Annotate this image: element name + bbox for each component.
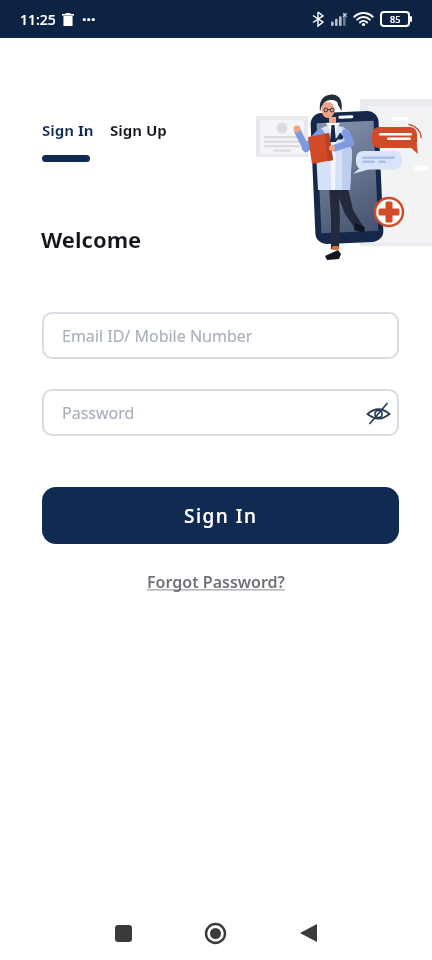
staticText: 85	[390, 13, 401, 25]
button[interactable]: Forgot Password?	[147, 571, 285, 593]
staticText: Sign Up	[110, 120, 167, 140]
button[interactable]: Sign In	[42, 120, 94, 162]
button[interactable]	[292, 917, 324, 949]
staticText: 11:25	[20, 10, 56, 29]
button[interactable]: Email ID/ Mobile Number	[42, 312, 399, 359]
staticText: Sign In	[184, 503, 258, 529]
staticText: Sign In	[42, 120, 94, 140]
staticText: Email ID/ Mobile Number	[62, 325, 253, 347]
staticText: Password	[62, 402, 135, 424]
button[interactable]: Sign Up	[110, 120, 167, 140]
button[interactable]	[199, 917, 231, 949]
button[interactable]: Sign In	[42, 487, 399, 544]
staticText: ···	[82, 8, 96, 30]
button[interactable]: Password	[42, 389, 399, 436]
button[interactable]	[107, 917, 139, 949]
staticText: Welcome	[41, 224, 142, 254]
